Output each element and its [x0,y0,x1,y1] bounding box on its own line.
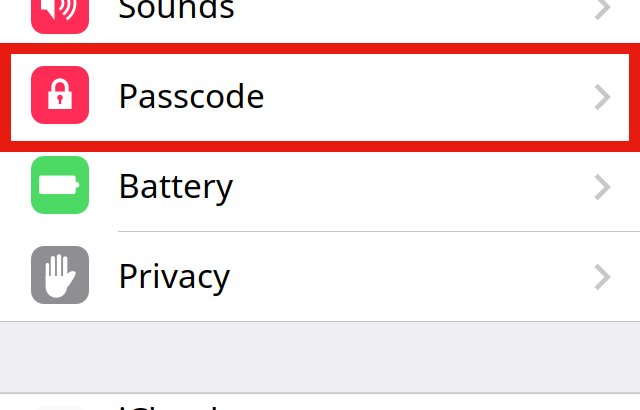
staticText: iCloud [118,397,219,410]
button[interactable]: Sounds [0,0,640,52]
staticText: Passcode [118,73,265,117]
button[interactable]: Battery [0,142,640,232]
staticText: Privacy [118,253,230,297]
button[interactable]: Passcode [0,52,640,142]
staticText: Sounds [118,0,235,27]
button[interactable]: Privacy [0,232,640,322]
button[interactable]: iCloud [0,394,640,410]
staticText: Battery [118,163,233,207]
